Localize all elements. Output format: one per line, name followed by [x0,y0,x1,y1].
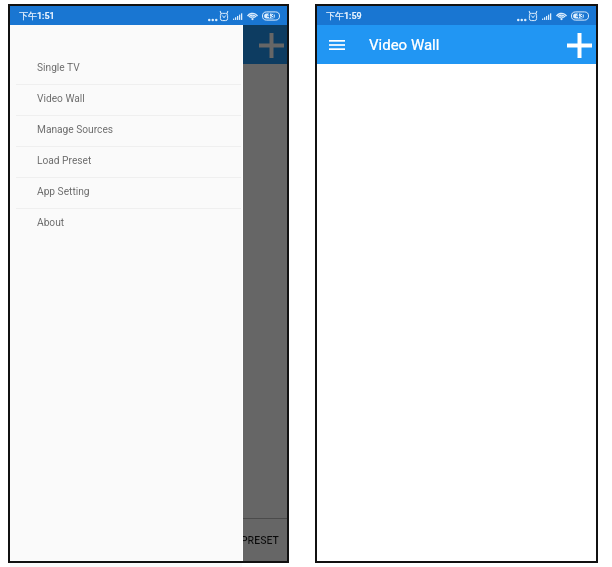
staticText: App Setting [37,186,90,198]
button[interactable]: Manage Sources [10,116,243,146]
staticText: 43 [576,12,584,20]
button[interactable]: Single TV [10,54,243,84]
button[interactable]: Load Preset [10,147,243,177]
staticText: 43 [267,12,275,20]
staticText: Load Preset [37,155,92,167]
staticText: About [37,217,65,229]
staticText: Manage Sources [37,124,114,136]
staticText: LOAD PRESET [212,534,279,546]
button[interactable]: Video Wall [10,85,243,115]
staticText: Single TV [37,62,80,74]
button[interactable]: About [10,209,243,239]
staticText: 下午1:59 [326,10,362,21]
button[interactable]: Add [565,31,593,59]
button[interactable]: Open navigation drawer [323,31,351,59]
button[interactable]: App Setting [10,178,243,208]
staticText: Video Wall [369,36,440,54]
staticText: 下午1:51 [19,10,55,21]
staticText: Video Wall [37,93,85,105]
button[interactable]: Add [257,31,285,59]
button[interactable]: LOAD PRESET [202,526,287,554]
